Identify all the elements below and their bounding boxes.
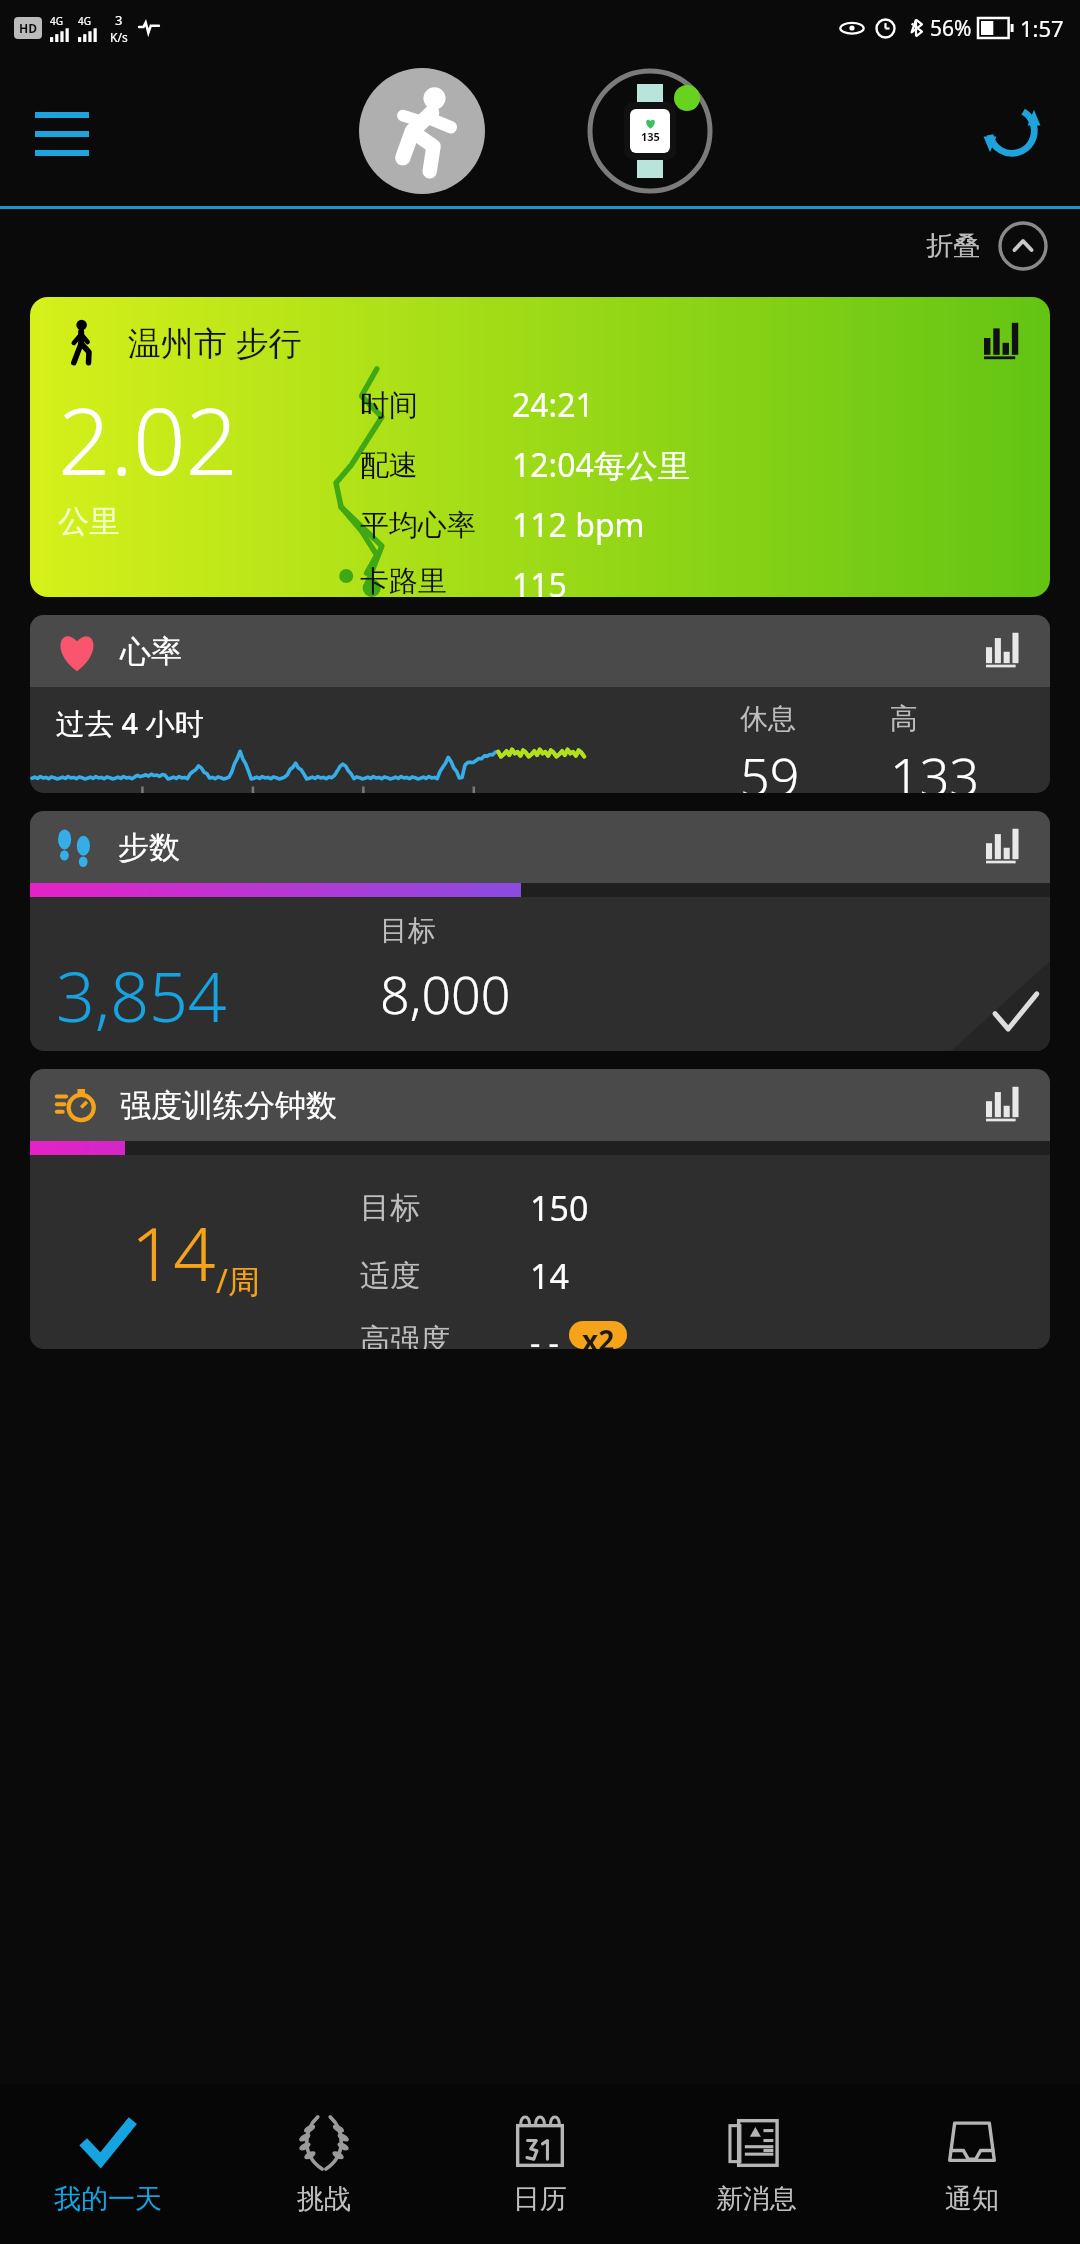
staticText: 4G: [50, 14, 63, 28]
staticText: 折叠: [926, 229, 980, 263]
staticText: 卡路里: [360, 563, 447, 597]
staticText: 1:57: [1020, 13, 1064, 43]
staticText: 适度: [360, 1257, 420, 1295]
staticText: 挑战: [297, 2182, 351, 2216]
button[interactable]: 新消息: [648, 2084, 864, 2244]
staticText: K/s: [110, 29, 128, 45]
button[interactable]: 心率: [30, 615, 1050, 793]
staticText: 3,854: [56, 949, 227, 1042]
staticText: HD: [19, 20, 37, 36]
button[interactable]: 折叠: [920, 217, 1054, 275]
staticText: 休息: [740, 701, 796, 736]
button[interactable]: Sync: [972, 91, 1052, 171]
staticText: 2.02: [58, 377, 239, 502]
button[interactable]: Menu: [26, 95, 98, 167]
staticText: 14: [131, 1202, 216, 1303]
button[interactable]: 通知: [864, 2084, 1080, 2244]
staticText: 通知: [945, 2182, 999, 2216]
button[interactable]: 挑战: [216, 2084, 432, 2244]
staticText: 150: [530, 1185, 589, 1231]
staticText: 135: [641, 129, 660, 144]
staticText: 56%: [930, 14, 972, 43]
staticText: 133: [890, 740, 980, 793]
button[interactable]: 步数: [30, 811, 1050, 1051]
staticText: 时间: [360, 387, 418, 424]
button[interactable]: 我的一天: [0, 2084, 216, 2244]
staticText: 14: [530, 1253, 569, 1299]
staticText: 高: [890, 701, 918, 736]
staticText: 强度训练分钟数: [120, 1086, 337, 1125]
staticText: 3: [115, 11, 123, 29]
staticText: 115: [512, 563, 567, 597]
button[interactable]: 强度训练分钟数: [30, 1069, 1050, 1349]
staticText: 4G: [78, 14, 91, 28]
staticText: 心率: [120, 632, 182, 671]
button[interactable]: Device: [586, 67, 714, 195]
staticText: x2: [582, 1321, 615, 1349]
staticText: 高强度: [360, 1321, 450, 1349]
staticText: 12:04每公里: [512, 443, 690, 487]
button[interactable]: Profile: [359, 68, 485, 194]
staticText: 24:21: [512, 383, 594, 427]
staticText: 过去 4 小时: [56, 703, 204, 743]
staticText: 目标: [360, 1189, 420, 1227]
staticText: 步数: [118, 828, 180, 867]
staticText: - -: [530, 1321, 559, 1349]
staticText: 我的一天: [54, 2182, 162, 2216]
staticText: 平均心率: [360, 507, 476, 544]
staticText: 日历: [513, 2182, 567, 2216]
staticText: /周: [216, 1259, 260, 1303]
button[interactable]: 温州市 步行: [30, 297, 1050, 597]
staticText: 目标: [380, 913, 436, 948]
staticText: 59: [740, 740, 800, 793]
staticText: 112 bpm: [512, 503, 645, 547]
staticText: 配速: [360, 447, 418, 484]
staticText: 新消息: [716, 2182, 797, 2216]
staticText: 公里: [58, 502, 120, 541]
staticText: 温州市 步行: [128, 320, 302, 365]
button[interactable]: 日历: [432, 2084, 648, 2244]
staticText: 8,000: [380, 958, 511, 1029]
